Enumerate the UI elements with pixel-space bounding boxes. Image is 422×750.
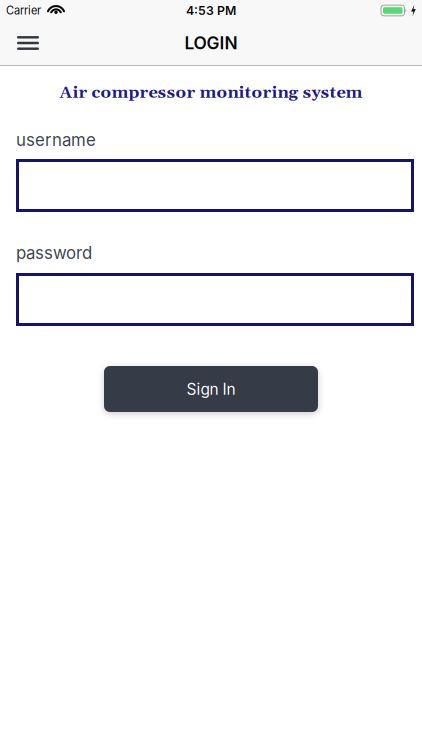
staticText: username [16,130,96,150]
staticText: Sign In [186,380,235,398]
staticText: LOGIN [184,32,237,53]
staticText: Carrier [6,4,41,17]
staticText: password [16,243,92,263]
button[interactable]: Sign In [104,366,318,412]
staticText: 4:53 PM [186,3,236,18]
button[interactable]: Menu [6,21,50,65]
staticText: Air compressor monitoring system [59,82,362,104]
